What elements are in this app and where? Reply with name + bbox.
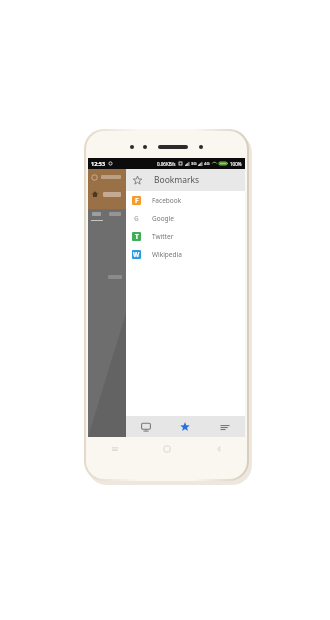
staticText: G xyxy=(134,214,139,223)
staticText: Google xyxy=(152,214,174,223)
staticText: 12:53 xyxy=(91,160,106,167)
button[interactable]: History xyxy=(205,416,245,437)
staticText: Twitter xyxy=(152,232,174,241)
button[interactable]: Desktop bookmarks xyxy=(126,416,165,437)
button[interactable]: T xyxy=(126,227,245,245)
staticText: F xyxy=(135,196,139,205)
staticText: Bookmarks xyxy=(154,174,200,186)
staticText: T xyxy=(135,232,139,241)
button[interactable]: Bookmarks xyxy=(165,416,205,437)
staticText: W xyxy=(133,250,140,259)
button[interactable]: Home xyxy=(141,437,193,461)
button[interactable]: G xyxy=(126,209,245,227)
staticText: 3G xyxy=(191,161,197,167)
staticText: Facebook xyxy=(152,196,182,205)
staticText: 4G xyxy=(204,161,210,167)
staticText: 0.06KB/s xyxy=(157,161,176,167)
staticText: Wikipedia xyxy=(152,250,182,259)
button[interactable]: Bookmarks xyxy=(126,169,245,191)
staticText: 100% xyxy=(230,161,242,167)
button[interactable]: W xyxy=(126,245,245,263)
button[interactable]: F xyxy=(126,191,245,209)
